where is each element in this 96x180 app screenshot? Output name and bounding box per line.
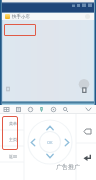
button[interactable]: Keyboard layout	[2, 105, 10, 113]
staticText: OK	[47, 140, 53, 145]
button[interactable]: OK	[42, 137, 58, 147]
button[interactable]: Theme	[49, 105, 57, 113]
staticText: 广告推广	[56, 163, 80, 171]
button[interactable]: 菜单	[2, 116, 24, 130]
button[interactable]: Search	[61, 105, 69, 113]
button[interactable]: Voice input	[37, 105, 45, 113]
staticText: 主页	[9, 137, 17, 142]
button[interactable]: Clipboard	[14, 105, 22, 113]
button[interactable]: 主页	[2, 132, 24, 146]
button[interactable]: Enter	[78, 151, 96, 165]
button[interactable]: 返回	[2, 149, 24, 163]
staticText: 快手小店	[12, 14, 30, 20]
button[interactable]: Emoji	[26, 105, 34, 113]
button[interactable]: More options	[84, 13, 91, 20]
button[interactable]: Backspace	[78, 124, 96, 138]
button[interactable]: 快手小店	[2, 13, 94, 20]
staticText: 菜单	[9, 121, 17, 126]
button[interactable]: Hide keyboard	[84, 105, 92, 113]
staticText: 返回	[9, 154, 17, 159]
